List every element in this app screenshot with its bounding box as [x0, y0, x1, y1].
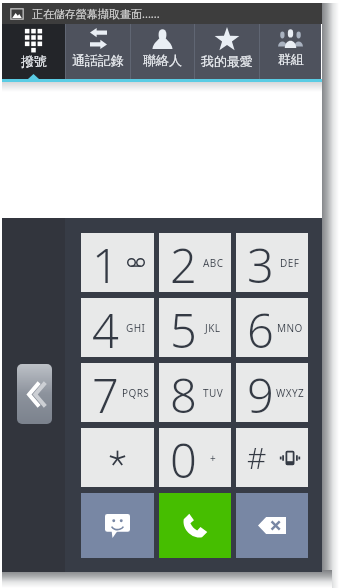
- staticText: WXYZ: [276, 386, 305, 400]
- button[interactable]: 9: [236, 363, 308, 422]
- button[interactable]: Message: [81, 493, 154, 558]
- staticText: 6: [247, 298, 274, 357]
- button[interactable]: 6: [236, 298, 308, 357]
- staticText: 群組: [278, 51, 304, 67]
- staticText: 我的最愛: [201, 53, 253, 69]
- button[interactable]: 0: [159, 428, 231, 487]
- button[interactable]: Star: [81, 428, 154, 487]
- staticText: 聯絡人: [143, 52, 182, 68]
- staticText: 3: [247, 233, 274, 292]
- button[interactable]: #: [236, 428, 308, 487]
- staticText: ABC: [203, 256, 224, 270]
- staticText: JKL: [205, 321, 221, 335]
- staticText: 正在儲存螢幕擷取畫面......: [32, 6, 160, 21]
- button[interactable]: 7: [81, 363, 154, 422]
- staticText: 5: [170, 298, 197, 357]
- button[interactable]: Groups: [260, 24, 321, 79]
- staticText: 8: [170, 363, 197, 422]
- button[interactable]: Favourites: [195, 24, 259, 79]
- button[interactable]: Open panel: [17, 364, 52, 424]
- staticText: #: [247, 437, 267, 478]
- button[interactable]: Dialpad: [2, 24, 65, 79]
- button[interactable]: Backspace: [236, 493, 308, 558]
- staticText: DEF: [280, 256, 300, 270]
- other: Call log: [90, 28, 107, 49]
- button[interactable]: Call: [159, 493, 231, 558]
- staticText: MNO: [277, 321, 303, 335]
- staticText: 撥號: [21, 53, 47, 69]
- button[interactable]: Contacts: [131, 24, 194, 79]
- other: Favourites: [215, 28, 239, 50]
- staticText: +: [210, 451, 217, 465]
- other: Dialpad: [24, 28, 43, 50]
- button[interactable]: Call log: [66, 24, 130, 79]
- staticText: 2: [170, 233, 197, 292]
- staticText: 9: [247, 363, 274, 422]
- button[interactable]: 8: [159, 363, 231, 422]
- button[interactable]: 4: [81, 298, 154, 357]
- staticText: TUV: [203, 386, 224, 400]
- staticText: GHI: [126, 321, 146, 335]
- other: Groups: [278, 28, 303, 48]
- staticText: 7: [92, 363, 119, 422]
- staticText: 1: [92, 233, 119, 292]
- staticText: PQRS: [122, 386, 150, 400]
- staticText: 4: [92, 298, 119, 357]
- button[interactable]: 3: [236, 233, 308, 292]
- other: Contacts: [152, 28, 173, 49]
- button[interactable]: 5: [159, 298, 231, 357]
- staticText: 0: [170, 428, 197, 487]
- staticText: 通話記錄: [72, 52, 124, 68]
- button[interactable]: 2: [159, 233, 231, 292]
- button[interactable]: 1: [81, 233, 154, 292]
